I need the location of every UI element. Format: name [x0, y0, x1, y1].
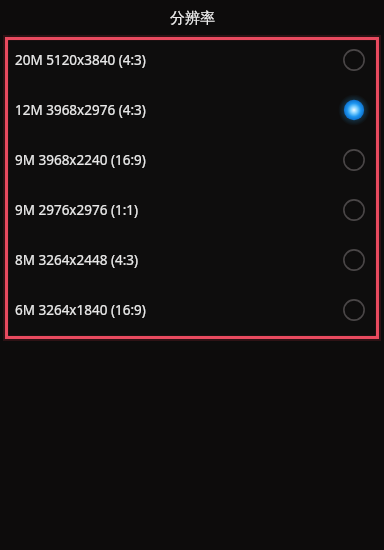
other: Selected: [341, 97, 367, 123]
other: Not selected: [341, 47, 367, 73]
other: Not selected: [341, 247, 367, 273]
button[interactable]: 9M 3968x2240 (16:9): [3, 135, 381, 185]
staticText: 20M 5120x3840 (4:3): [15, 51, 341, 69]
staticText: 8M 3264x2448 (4:3): [15, 251, 341, 269]
staticText: 9M 2976x2976 (1:1): [15, 201, 341, 219]
other: Not selected: [341, 197, 367, 223]
other: Not selected: [341, 297, 367, 323]
other: Not selected: [341, 147, 367, 173]
staticText: 6M 3264x1840 (16:9): [15, 301, 341, 319]
staticText: 分辨率: [170, 9, 215, 28]
button[interactable]: 6M 3264x1840 (16:9): [3, 285, 381, 335]
button[interactable]: 12M 3968x2976 (4:3): [3, 85, 381, 135]
staticText: 12M 3968x2976 (4:3): [15, 101, 341, 119]
button[interactable]: 20M 5120x3840 (4:3): [3, 35, 381, 85]
button[interactable]: 8M 3264x2448 (4:3): [3, 235, 381, 285]
button[interactable]: 9M 2976x2976 (1:1): [3, 185, 381, 235]
staticText: 9M 3968x2240 (16:9): [15, 151, 341, 169]
